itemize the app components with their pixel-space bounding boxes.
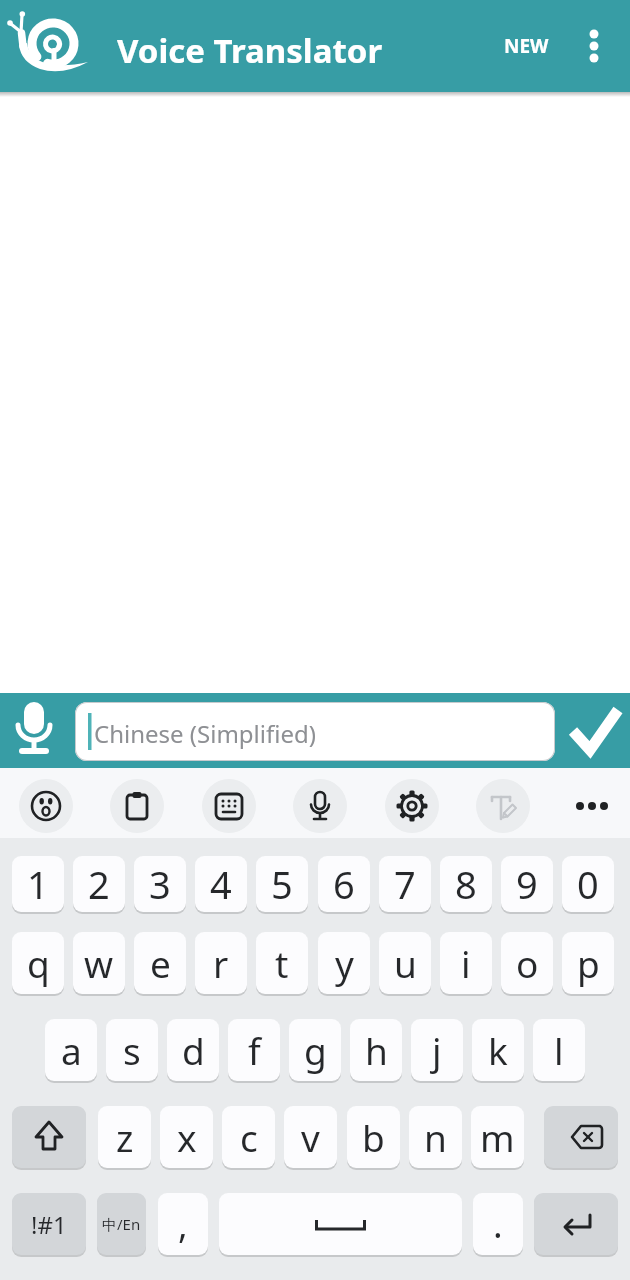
staticText: 3: [149, 858, 171, 910]
button[interactable]: k: [472, 1019, 524, 1081]
button[interactable]: [202, 779, 256, 833]
button[interactable]: [385, 779, 439, 833]
button[interactable]: [19, 779, 73, 833]
button[interactable]: 2: [73, 856, 125, 912]
button[interactable]: [293, 779, 347, 833]
staticText: 6: [333, 858, 355, 910]
button[interactable]: x: [160, 1106, 213, 1168]
staticText: 4: [210, 858, 232, 910]
button[interactable]: m: [471, 1106, 524, 1168]
button[interactable]: [12, 1106, 86, 1168]
button[interactable]: f: [228, 1019, 280, 1081]
staticText: o: [516, 938, 539, 988]
staticText: 中/En: [102, 1214, 141, 1234]
staticText: t: [275, 938, 289, 988]
button[interactable]: 3: [134, 856, 186, 912]
staticText: q: [27, 938, 50, 988]
button[interactable]: [570, 779, 616, 833]
staticText: 8: [455, 858, 477, 910]
button[interactable]: 0: [562, 856, 614, 912]
staticText: p: [577, 938, 600, 988]
button[interactable]: [544, 1106, 618, 1168]
staticText: 1: [27, 858, 49, 910]
staticText: i: [461, 938, 471, 988]
staticText: 9: [516, 858, 538, 910]
button[interactable]: .: [473, 1193, 523, 1255]
button[interactable]: 4: [195, 856, 247, 912]
button[interactable]: b: [347, 1106, 400, 1168]
staticText: 0: [577, 858, 599, 910]
staticText: !#1: [31, 1208, 67, 1241]
staticText: c: [240, 1112, 258, 1162]
staticText: b: [362, 1112, 385, 1162]
button[interactable]: !#1: [12, 1193, 86, 1255]
button[interactable]: d: [167, 1019, 219, 1081]
button[interactable]: ,: [158, 1193, 208, 1255]
button[interactable]: [534, 1193, 618, 1255]
staticText: v: [301, 1112, 320, 1162]
button[interactable]: NEW: [496, 30, 556, 62]
staticText: j: [432, 1025, 442, 1075]
button[interactable]: u: [379, 932, 431, 994]
button[interactable]: q: [12, 932, 64, 994]
staticText: Voice Translator: [117, 28, 383, 73]
staticText: 7: [394, 858, 416, 910]
staticText: l: [554, 1025, 564, 1075]
button[interactable]: 6: [318, 856, 370, 912]
button[interactable]: l: [533, 1019, 585, 1081]
button[interactable]: t: [256, 932, 308, 994]
button[interactable]: [110, 779, 164, 833]
button[interactable]: s: [106, 1019, 158, 1081]
button[interactable]: 中/En: [97, 1193, 146, 1255]
button[interactable]: [576, 10, 616, 82]
button[interactable]: e: [134, 932, 186, 994]
staticText: w: [84, 938, 114, 988]
button[interactable]: n: [409, 1106, 462, 1168]
staticText: n: [424, 1112, 447, 1162]
button[interactable]: [565, 698, 625, 763]
staticText: a: [61, 1025, 82, 1075]
staticText: x: [177, 1112, 197, 1162]
staticText: d: [182, 1025, 205, 1075]
staticText: h: [365, 1025, 388, 1075]
button[interactable]: 5: [256, 856, 308, 912]
button[interactable]: w: [73, 932, 125, 994]
staticText: f: [248, 1025, 261, 1075]
button[interactable]: c: [222, 1106, 275, 1168]
button[interactable]: [8, 698, 60, 763]
staticText: 5: [271, 858, 293, 910]
button[interactable]: z: [98, 1106, 151, 1168]
button[interactable]: r: [195, 932, 247, 994]
staticText: 2: [88, 858, 110, 910]
staticText: .: [493, 1200, 503, 1249]
button[interactable]: a: [45, 1019, 97, 1081]
button[interactable]: h: [350, 1019, 402, 1081]
button[interactable]: 7: [379, 856, 431, 912]
button[interactable]: y: [318, 932, 370, 994]
staticText: Chinese (Simplified): [94, 717, 316, 750]
button[interactable]: i: [440, 932, 492, 994]
button[interactable]: 1: [12, 856, 64, 912]
button[interactable]: 9: [501, 856, 553, 912]
button[interactable]: 8: [440, 856, 492, 912]
button[interactable]: o: [501, 932, 553, 994]
button[interactable]: p: [562, 932, 614, 994]
button[interactable]: [476, 779, 530, 833]
staticText: e: [150, 938, 171, 988]
staticText: z: [116, 1112, 134, 1162]
staticText: NEW: [504, 33, 549, 59]
staticText: k: [488, 1025, 508, 1075]
staticText: r: [213, 938, 229, 988]
button[interactable]: g: [289, 1019, 341, 1081]
button[interactable]: j: [411, 1019, 463, 1081]
button[interactable]: v: [284, 1106, 337, 1168]
button[interactable]: [219, 1193, 462, 1255]
staticText: ,: [178, 1200, 188, 1249]
staticText: y: [335, 938, 354, 988]
staticText: u: [394, 938, 417, 988]
staticText: m: [480, 1112, 515, 1162]
button[interactable]: Chinese (Simplified): [75, 702, 555, 761]
staticText: s: [123, 1025, 141, 1075]
staticText: g: [304, 1025, 327, 1075]
